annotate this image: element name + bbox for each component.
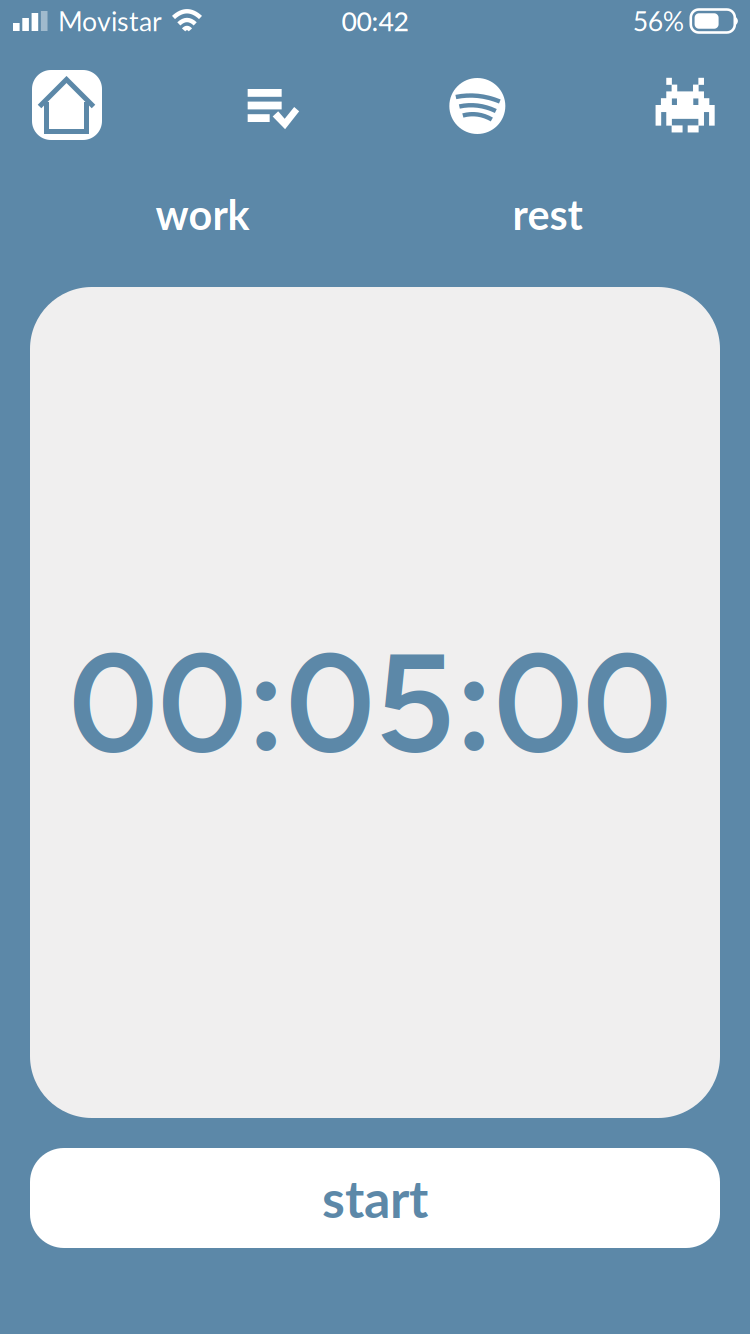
staticText: 00:05:00	[68, 619, 671, 786]
button[interactable]: start	[30, 1148, 720, 1248]
button[interactable]: Arcade	[636, 62, 738, 148]
staticText: work	[155, 189, 249, 239]
staticText: rest	[512, 189, 582, 239]
button[interactable]: rest	[375, 184, 720, 244]
button[interactable]: Task list	[223, 62, 325, 148]
button[interactable]: Spotify	[429, 62, 531, 148]
staticText: 00:42	[341, 5, 408, 37]
staticText: 56%	[633, 5, 684, 37]
staticText: start	[322, 1167, 428, 1229]
button[interactable]: Home	[16, 62, 118, 148]
button[interactable]: work	[30, 184, 375, 244]
staticText: Movistar	[58, 5, 162, 37]
